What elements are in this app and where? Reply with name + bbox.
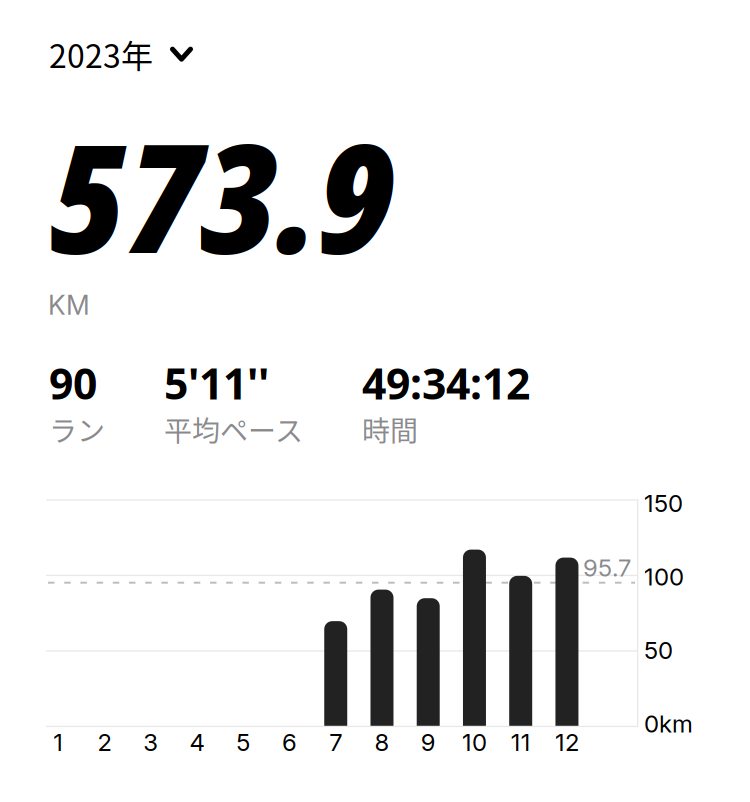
- staticText: 573.9: [49, 92, 394, 297]
- staticText: 6: [282, 728, 297, 757]
- staticText: 12: [555, 728, 579, 757]
- staticText: 49:34:12: [362, 354, 530, 412]
- staticText: 5: [236, 728, 250, 757]
- staticText: 7: [329, 728, 342, 757]
- staticText: 平均ペース: [164, 409, 303, 450]
- staticText: 10: [462, 728, 487, 757]
- staticText: KM: [48, 289, 90, 321]
- staticText: 5'11'': [164, 354, 269, 412]
- staticText: 90: [49, 354, 97, 412]
- staticText: 4: [189, 728, 204, 757]
- staticText: 50: [644, 636, 673, 665]
- staticText: 0km: [644, 709, 693, 738]
- staticText: 150: [644, 489, 683, 518]
- staticText: 2: [97, 728, 111, 757]
- staticText: 95.7: [583, 553, 631, 582]
- staticText: 3: [143, 728, 158, 757]
- staticText: 11: [511, 728, 531, 757]
- staticText: 2023年: [49, 31, 153, 77]
- staticText: 時間: [362, 409, 418, 450]
- staticText: 1: [53, 728, 63, 757]
- staticText: ラン: [49, 409, 105, 450]
- staticText: 8: [374, 728, 389, 757]
- staticText: 9: [421, 728, 436, 757]
- staticText: 100: [644, 562, 684, 591]
- button[interactable]: 2023年: [49, 23, 201, 85]
